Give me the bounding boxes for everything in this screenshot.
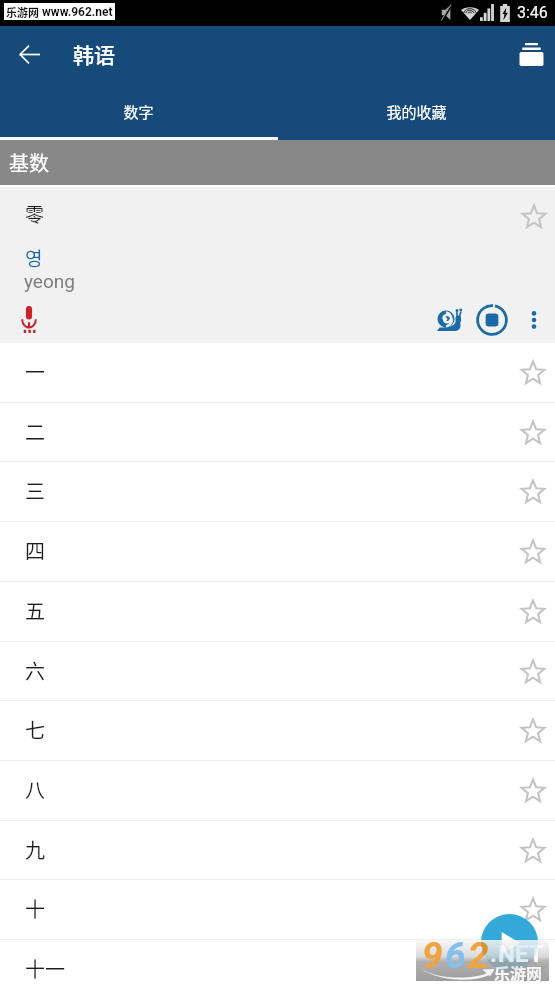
staticText: 9 [422, 940, 443, 975]
staticText: 数字 [123, 101, 154, 123]
staticText: 二 [25, 417, 45, 446]
button[interactable]: 七 [0, 701, 555, 760]
button[interactable]: 我的收藏 [277, 85, 555, 140]
staticText: NET [498, 940, 544, 968]
button[interactable]: 九 [0, 821, 555, 880]
staticText: 八 [25, 775, 45, 804]
staticText: 영 [25, 244, 43, 272]
button[interactable]: Slow playback [427, 298, 471, 342]
button[interactable]: Favorite [512, 195, 555, 239]
button[interactable]: Play [481, 914, 538, 971]
button[interactable]: Favorite [511, 709, 555, 753]
staticText: 3:46 [517, 3, 548, 22]
button[interactable]: Favorite [511, 888, 555, 932]
button[interactable]: Back [7, 32, 51, 76]
button[interactable]: Favorite [511, 769, 555, 813]
staticText: 我的收藏 [386, 101, 447, 123]
staticText: . [490, 940, 497, 968]
staticText: 乐游网 [6, 4, 39, 20]
button[interactable]: 六 [0, 642, 555, 701]
staticText: 零 [25, 200, 45, 228]
staticText: 四 [25, 536, 45, 565]
button[interactable]: Favorite [511, 948, 555, 988]
button[interactable]: More options [512, 298, 555, 342]
staticText: 基数 [9, 148, 49, 177]
button[interactable]: Favorite [511, 590, 555, 634]
button[interactable]: 五 [0, 582, 555, 641]
button[interactable]: 八 [0, 761, 555, 820]
button[interactable]: Flashcards [509, 32, 553, 76]
button[interactable]: Favorite [511, 411, 555, 455]
button[interactable]: Favorite [511, 829, 555, 873]
staticText: 九 [25, 835, 45, 864]
staticText: 乐游网 [494, 961, 543, 981]
button[interactable]: Favorite [511, 650, 555, 694]
staticText: 2 [468, 940, 489, 975]
staticText: www.962.net [42, 5, 113, 19]
button[interactable]: Favorite [511, 351, 555, 395]
staticText: 七 [25, 715, 45, 744]
button[interactable]: 一 [0, 343, 555, 402]
button[interactable]: 三 [0, 462, 555, 521]
button[interactable]: 二 [0, 403, 555, 462]
button[interactable]: 数字 [0, 85, 277, 140]
staticText: 十一 [25, 954, 65, 983]
staticText: yeong [24, 270, 75, 292]
button[interactable]: Favorite [511, 470, 555, 514]
staticText: 韩语 [73, 39, 115, 69]
button[interactable]: 十一 [0, 940, 555, 988]
staticText: 三 [25, 476, 45, 505]
staticText: 一 [25, 357, 45, 386]
button[interactable]: 十 [0, 880, 555, 939]
button[interactable]: Favorite [511, 530, 555, 574]
staticText: 五 [25, 596, 45, 625]
staticText: 6 [445, 940, 466, 975]
staticText: 六 [25, 656, 45, 685]
staticText: 十 [25, 894, 45, 923]
button[interactable]: Record [7, 297, 51, 341]
button[interactable]: Play audio [470, 298, 514, 342]
button[interactable]: 四 [0, 522, 555, 581]
